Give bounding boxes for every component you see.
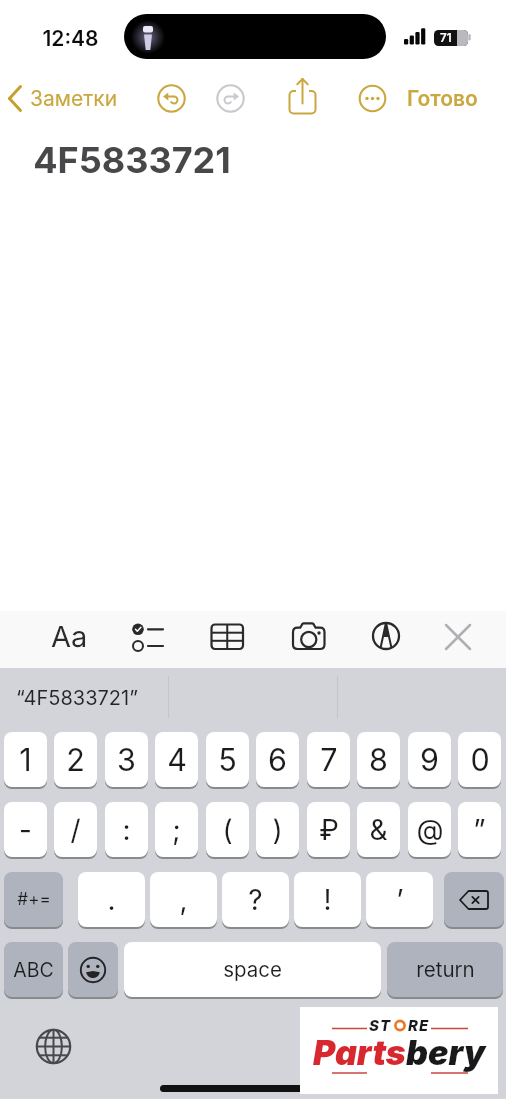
button[interactable]: !: [294, 872, 361, 927]
button[interactable]: “4F5833721”: [0, 668, 169, 728]
button[interactable]: ): [256, 802, 299, 857]
button[interactable]: &: [357, 802, 400, 857]
staticText: 3: [117, 741, 136, 778]
staticText: 71: [440, 31, 452, 45]
staticText: “4F5833721”: [16, 686, 138, 710]
button[interactable]: ,: [150, 872, 217, 927]
button[interactable]: /: [54, 802, 97, 857]
staticText: .: [107, 883, 116, 917]
button[interactable]: #+=: [4, 872, 63, 927]
button[interactable]: 4: [155, 732, 198, 787]
staticText: bery: [406, 1032, 486, 1073]
button[interactable]: .: [78, 872, 145, 927]
button[interactable]: (: [206, 802, 249, 857]
staticText: 8: [369, 741, 388, 778]
staticText: 4: [167, 741, 187, 778]
button[interactable]: return: [387, 942, 503, 997]
staticText: ABC: [13, 958, 54, 982]
button[interactable]: ;: [155, 802, 198, 857]
staticText: -: [19, 813, 32, 847]
staticText: Готово: [407, 86, 478, 111]
button[interactable]: Aa: [46, 613, 92, 659]
staticText: @: [416, 813, 444, 847]
staticText: Parts: [313, 1032, 406, 1073]
button[interactable]: Готово: [400, 83, 492, 113]
button[interactable]: 0: [458, 732, 501, 787]
staticText: ”: [473, 813, 486, 847]
button[interactable]: [213, 81, 248, 116]
button[interactable]: ?: [222, 872, 289, 927]
button[interactable]: ABC: [4, 942, 63, 997]
staticText: #+=: [17, 889, 51, 910]
button[interactable]: [444, 872, 504, 927]
staticText: ’: [396, 883, 404, 917]
button[interactable]: [68, 942, 118, 997]
staticText: 1: [19, 741, 32, 778]
button[interactable]: [154, 81, 189, 116]
button[interactable]: :: [105, 802, 148, 857]
button[interactable]: [435, 614, 481, 660]
button[interactable]: Заметки: [2, 80, 130, 117]
staticText: ;: [172, 813, 181, 847]
button[interactable]: 5: [206, 732, 249, 787]
button[interactable]: 6: [256, 732, 299, 787]
staticText: !: [323, 883, 332, 917]
staticText: ): [272, 813, 283, 847]
staticText: 9: [420, 741, 439, 778]
button[interactable]: @: [408, 802, 451, 857]
button[interactable]: space: [124, 942, 381, 997]
staticText: Заметки: [30, 86, 118, 111]
button[interactable]: 3: [105, 732, 148, 787]
button[interactable]: 1: [4, 732, 47, 787]
staticText: 4F5833721: [33, 138, 231, 182]
button[interactable]: 2: [54, 732, 97, 787]
button[interactable]: [355, 81, 390, 116]
button[interactable]: [28, 1021, 78, 1071]
staticText: 7: [320, 741, 338, 778]
staticText: ?: [248, 883, 263, 917]
staticText: RE: [408, 1016, 430, 1034]
button[interactable]: [363, 613, 409, 659]
staticText: Aa: [51, 619, 88, 654]
button[interactable]: ₽: [307, 802, 350, 857]
button[interactable]: [283, 72, 323, 118]
button[interactable]: [284, 615, 330, 661]
staticText: :: [122, 813, 131, 847]
button[interactable]: [204, 615, 250, 661]
staticText: space: [223, 957, 282, 982]
staticText: 12:48: [42, 26, 99, 51]
staticText: &: [369, 813, 388, 847]
staticText: /: [70, 813, 81, 847]
staticText: 5: [218, 741, 237, 778]
button[interactable]: ’: [366, 872, 433, 927]
button[interactable]: ”: [458, 802, 501, 857]
button[interactable]: -: [4, 802, 47, 857]
staticText: 6: [268, 741, 287, 778]
staticText: (: [222, 813, 233, 847]
button[interactable]: 9: [408, 732, 451, 787]
button[interactable]: [123, 615, 169, 661]
staticText: ₽: [319, 813, 339, 847]
staticText: ,: [179, 883, 188, 917]
staticText: 0: [470, 741, 490, 778]
button[interactable]: 7: [307, 732, 350, 787]
staticText: ST: [369, 1016, 392, 1034]
staticText: return: [416, 957, 475, 982]
button[interactable]: 8: [357, 732, 400, 787]
staticText: 2: [66, 741, 85, 778]
